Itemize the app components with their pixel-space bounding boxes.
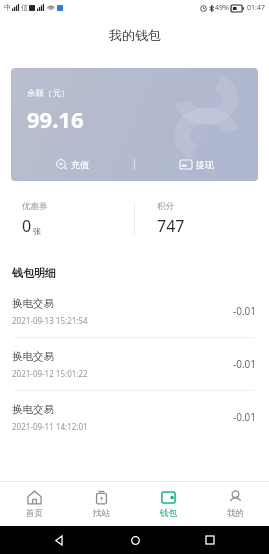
staticText: 换电交易 — [12, 297, 54, 310]
button[interactable]: Back — [42, 526, 76, 554]
button[interactable]: 换电交易 — [0, 391, 269, 443]
button[interactable]: 余额（元） — [11, 68, 258, 181]
button[interactable]: 积分 — [135, 191, 269, 247]
button[interactable]: 钱包 — [135, 482, 202, 526]
staticText: -0.01 — [233, 357, 257, 371]
staticText: 充值 — [71, 159, 89, 170]
staticText: 提现 — [196, 159, 214, 170]
staticText: 张 — [33, 226, 41, 236]
staticText: 换电交易 — [12, 350, 54, 363]
staticText: 01:47 — [247, 3, 265, 13]
staticText: 我的钱包 — [109, 27, 161, 43]
staticText: 747 — [157, 215, 185, 237]
staticText: -0.01 — [233, 304, 257, 318]
staticText: 中 — [4, 3, 11, 12]
staticText: 余额（元） — [27, 88, 70, 99]
other: 钱包 — [161, 490, 176, 505]
staticText: 找站 — [93, 508, 110, 519]
button[interactable]: 提现 — [135, 147, 258, 181]
staticText: 优惠券 — [22, 201, 48, 212]
other: 充值 — [56, 159, 67, 170]
button[interactable]: Home — [118, 526, 152, 554]
button[interactable]: 优惠券 — [0, 191, 134, 247]
staticText: 钱包明细 — [12, 266, 56, 280]
staticText: -0.01 — [233, 410, 257, 424]
other: 我的 — [228, 490, 243, 505]
button[interactable]: 充值 — [11, 147, 134, 181]
staticText: 首页 — [26, 508, 43, 519]
other: 首页 — [27, 490, 42, 505]
staticText: 换电交易 — [12, 403, 54, 416]
other: 找站 — [94, 490, 109, 505]
staticText: 2021-09-12 15:01:22 — [12, 368, 88, 379]
staticText: 钱包 — [160, 508, 177, 519]
staticText: 99.16 — [27, 104, 84, 134]
staticText: 信 — [21, 3, 28, 12]
staticText: 我的 — [227, 508, 244, 519]
other: 提现 — [180, 160, 192, 169]
button[interactable]: 换电交易 — [0, 338, 269, 391]
staticText: 2021-09-11 14:12:01 — [12, 421, 88, 432]
button[interactable]: 找站 — [68, 482, 135, 526]
button[interactable]: 首页 — [0, 482, 68, 526]
button[interactable]: Recents — [193, 526, 227, 554]
staticText: 49% — [215, 3, 229, 13]
button[interactable]: 换电交易 — [0, 285, 269, 338]
staticText: 2021-09-13 15:21:54 — [12, 315, 88, 326]
staticText: 积分 — [157, 201, 174, 212]
button[interactable]: 我的 — [202, 482, 269, 526]
staticText: 0 — [22, 215, 32, 237]
